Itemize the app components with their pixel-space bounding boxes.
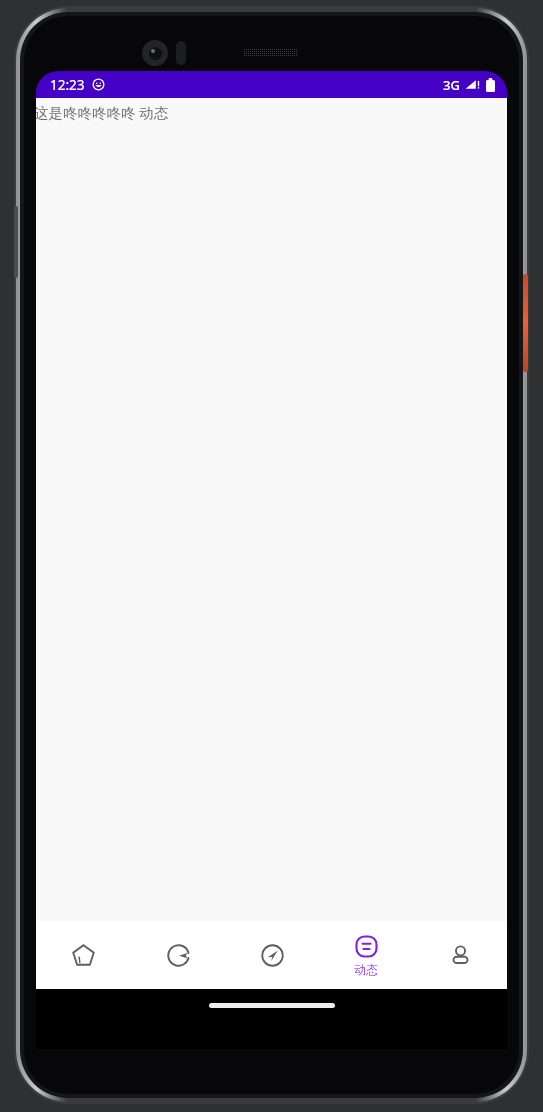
button[interactable]: Nearby bbox=[225, 921, 319, 989]
staticText: 这是咚咚咚咚咚 动态 bbox=[36, 102, 169, 122]
staticText: 3G bbox=[443, 76, 460, 94]
staticText: 动态 bbox=[354, 962, 378, 977]
button[interactable]: Profile bbox=[413, 921, 507, 989]
button[interactable]: Discover bbox=[131, 921, 225, 989]
button[interactable]: Home bbox=[36, 921, 131, 989]
button[interactable]: 动态 bbox=[319, 921, 413, 989]
staticText: 12:23 bbox=[50, 76, 85, 94]
